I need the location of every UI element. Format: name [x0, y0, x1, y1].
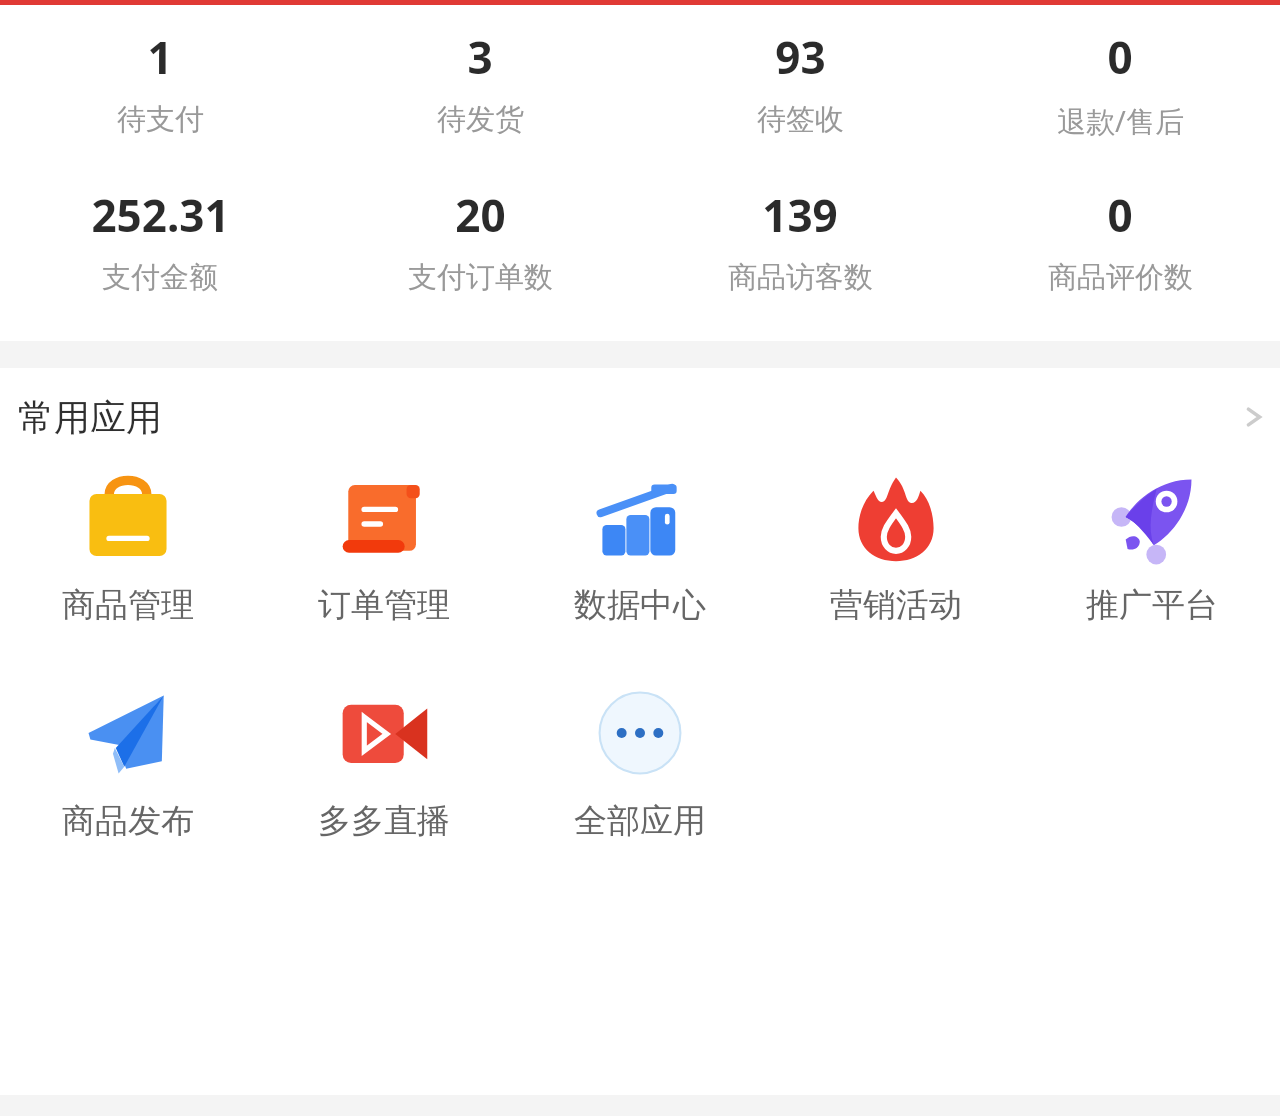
button[interactable]: 1 [0, 27, 320, 138]
staticText: 待签收 [757, 101, 844, 138]
staticText: 推广平台 [1086, 584, 1218, 626]
staticText: 3 [467, 27, 493, 87]
button[interactable]: 252.31 [0, 185, 320, 296]
staticText: 139 [762, 185, 838, 245]
staticText: 订单管理 [318, 584, 450, 626]
staticText: 93 [775, 27, 826, 87]
button[interactable]: 常用应用 [0, 368, 1280, 466]
staticText: 营销活动 [830, 584, 962, 626]
staticText: 支付订单数 [408, 259, 553, 296]
staticText: 商品访客数 [728, 259, 873, 296]
button[interactable]: 0 [960, 27, 1280, 141]
staticText: 商品管理 [62, 584, 194, 626]
staticText: 252.31 [91, 185, 230, 245]
button[interactable]: 商品管理 [0, 466, 256, 630]
staticText: 待发货 [437, 101, 524, 138]
staticText: 支付金额 [102, 259, 218, 296]
button[interactable]: 139 [640, 185, 960, 296]
button[interactable]: 20 [320, 185, 640, 296]
staticText: 商品评价数 [1048, 259, 1193, 296]
staticText: 多多直播 [318, 800, 450, 842]
button[interactable]: 93 [640, 27, 960, 138]
staticText: 商品发布 [62, 800, 194, 842]
button[interactable]: 推广平台 [1024, 466, 1280, 630]
staticText: 全部应用 [574, 800, 706, 842]
button[interactable]: 0 [960, 185, 1280, 296]
staticText: 0 [1107, 27, 1133, 87]
staticText: 1 [147, 27, 173, 87]
button[interactable]: 营销活动 [768, 466, 1024, 630]
staticText: 常用应用 [18, 395, 162, 440]
button[interactable]: 3 [320, 27, 640, 138]
staticText: 待支付 [117, 101, 204, 138]
staticText: 0 [1107, 185, 1133, 245]
staticText: 数据中心 [574, 584, 706, 626]
button[interactable]: 多多直播 [256, 682, 512, 846]
button[interactable]: 订单管理 [256, 466, 512, 630]
button[interactable]: 全部应用 [512, 682, 768, 846]
staticText: 20 [455, 185, 506, 245]
button[interactable]: 商品发布 [0, 682, 256, 846]
staticText: 退款/售后 [1057, 101, 1184, 141]
button[interactable]: 数据中心 [512, 466, 768, 630]
